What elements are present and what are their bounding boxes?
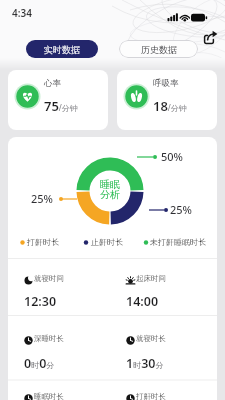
staticText: 历史数据 (141, 44, 177, 55)
button[interactable]: 起床时间 (126, 274, 214, 316)
staticText: 4:34 (12, 6, 32, 20)
staticText: 打鼾时长 (27, 237, 59, 247)
staticText: 睡眠时长 (34, 392, 64, 400)
staticText: 起床时间 (136, 274, 166, 283)
staticText: 50% (161, 149, 183, 164)
staticText: 75/分钟 (44, 97, 78, 115)
staticText: 就寝时间 (34, 274, 64, 283)
button[interactable]: 呼吸率 (117, 70, 217, 130)
staticText: 25% (170, 202, 192, 217)
staticText: 实时数据 (44, 44, 80, 55)
staticText: 12:30 (24, 293, 57, 310)
staticText: 止鼾时长 (91, 237, 123, 247)
button[interactable]: 就寝时长 (126, 334, 214, 376)
staticText: 18/分钟 (153, 97, 187, 115)
button[interactable] (202, 29, 220, 47)
staticText: 心率 (44, 78, 61, 89)
staticText: 未打鼾睡眠时长 (150, 237, 206, 247)
staticText: 0时0分 (24, 355, 55, 372)
button[interactable]: 心率 (8, 70, 108, 130)
staticText: 就寝时长 (136, 334, 166, 343)
staticText: 深睡时长 (34, 334, 64, 343)
button[interactable]: 深睡时长 (24, 334, 112, 376)
staticText: 打鼾时长 (136, 392, 166, 400)
staticText: 呼吸率 (153, 78, 179, 89)
staticText: 1时30分 (126, 355, 164, 372)
staticText: 睡眠 分析 (90, 178, 130, 201)
staticText: 14:00 (126, 293, 159, 310)
button[interactable]: 就寝时间 (24, 274, 112, 316)
button[interactable]: 打鼾时长 (126, 392, 214, 400)
button[interactable]: 实时数据 (26, 40, 98, 58)
staticText: 25% (31, 191, 53, 206)
button[interactable]: 历史数据 (119, 40, 198, 58)
button[interactable]: 睡眠时长 (24, 392, 112, 400)
